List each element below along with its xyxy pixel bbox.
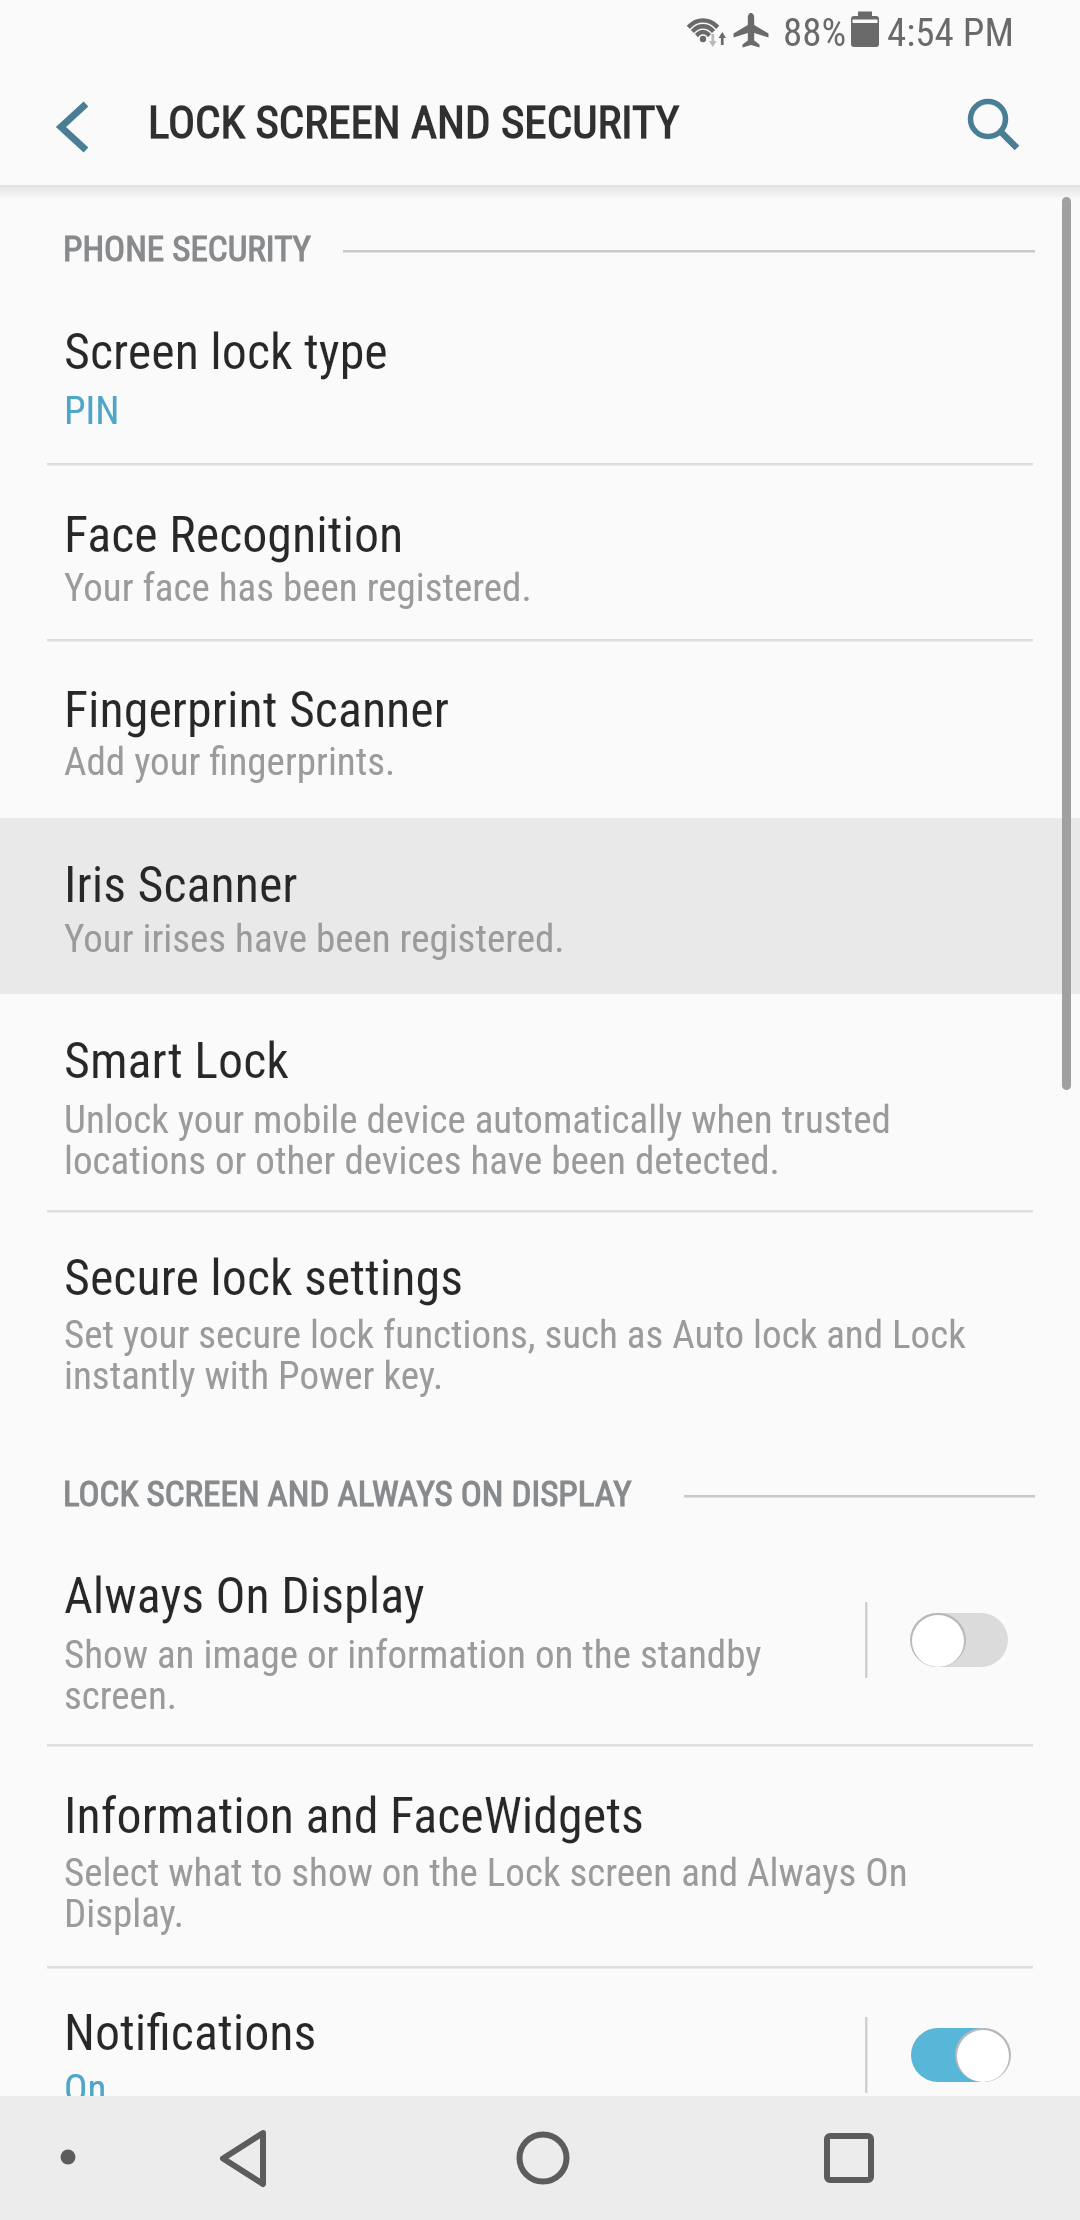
button[interactable]: Face Recognition — [0, 465, 1080, 641]
button[interactable]: Notifications — [0, 1968, 1080, 2096]
staticText: Notifications — [64, 2004, 317, 2063]
staticText: Face Recognition — [64, 506, 404, 565]
staticText: Unlock your mobile device automatically … — [64, 1097, 1014, 1184]
button[interactable] — [911, 1613, 1009, 1667]
button[interactable] — [493, 2108, 593, 2208]
button[interactable] — [193, 2108, 293, 2208]
button[interactable] — [30, 85, 120, 170]
button[interactable]: Information and FaceWidgets — [0, 1746, 1080, 1968]
button[interactable] — [28, 2117, 108, 2197]
button[interactable]: Always On Display — [0, 1540, 1080, 1746]
staticText: Secure lock settings — [64, 1249, 463, 1308]
button[interactable]: Secure lock settings — [0, 1212, 1080, 1430]
staticText: LOCK SCREEN AND ALWAYS ON DISPLAY — [63, 1474, 632, 1515]
staticText: Information and FaceWidgets — [64, 1787, 644, 1846]
staticText: Your irises have been registered. — [64, 916, 1014, 962]
staticText: 88% — [783, 10, 847, 56]
staticText: Your face has been registered. — [64, 565, 1014, 611]
button[interactable] — [945, 80, 1040, 170]
button[interactable]: Iris Scanner — [0, 818, 1080, 994]
staticText: Always On Display — [64, 1567, 425, 1626]
button[interactable]: Smart Lock — [0, 994, 1080, 1212]
button[interactable] — [911, 2028, 1009, 2082]
staticText: Smart Lock — [64, 1032, 289, 1091]
staticText: On — [64, 2066, 1014, 2112]
staticText: Select what to show on the Lock screen a… — [64, 1850, 984, 1937]
staticText: 4:54 PM — [887, 10, 1014, 56]
staticText: PIN — [64, 388, 1014, 434]
button[interactable] — [799, 2108, 899, 2208]
staticText: Add your fingerprints. — [64, 739, 1014, 785]
staticText: Show an image or information on the stan… — [64, 1632, 865, 1719]
staticText: PHONE SECURITY — [63, 229, 311, 270]
staticText: Fingerprint Scanner — [64, 681, 450, 740]
staticText: Screen lock type — [64, 323, 388, 382]
staticText: Set your secure lock functions, such as … — [64, 1312, 1014, 1399]
staticText: Iris Scanner — [64, 856, 298, 915]
button[interactable]: Fingerprint Scanner — [0, 641, 1080, 818]
button[interactable]: Screen lock type — [0, 290, 1080, 465]
staticText: LOCK SCREEN AND SECURITY — [148, 96, 680, 149]
